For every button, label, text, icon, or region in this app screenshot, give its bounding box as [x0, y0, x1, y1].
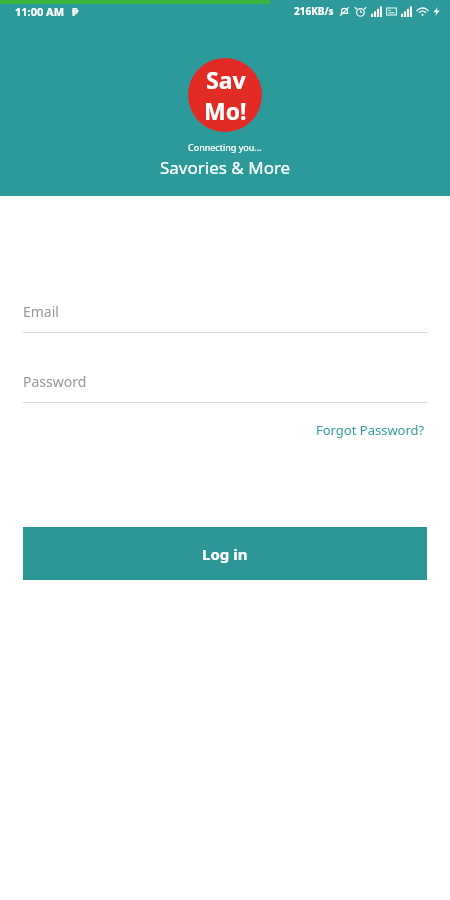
- other: Alarm: [355, 6, 366, 17]
- staticText: Forgot Password?: [316, 421, 425, 439]
- staticText: Log in: [202, 544, 248, 564]
- button[interactable]: Email: [23, 302, 427, 333]
- staticText: Mo!: [204, 95, 247, 126]
- other: VoLTE: [386, 6, 397, 17]
- button[interactable]: Forgot Password?: [314, 417, 427, 443]
- button[interactable]: Password: [23, 372, 427, 403]
- staticText: 11:00 AM: [15, 4, 65, 19]
- other: Charging: [432, 7, 441, 16]
- staticText: 216KB/s: [294, 4, 334, 18]
- staticText: Email: [23, 302, 59, 321]
- button[interactable]: Log in: [23, 527, 427, 580]
- staticText: Password: [23, 372, 87, 391]
- staticText: Connecting you...: [188, 141, 262, 153]
- other: Signal: [401, 6, 412, 17]
- other: Wi-Fi: [417, 6, 428, 17]
- other: Signal: [371, 6, 382, 17]
- staticText: Savories & More: [160, 156, 291, 179]
- other: Silent mode: [339, 6, 350, 17]
- staticText: ₱: [72, 4, 79, 19]
- staticText: Sav: [206, 64, 246, 95]
